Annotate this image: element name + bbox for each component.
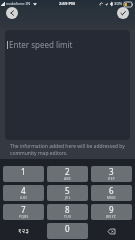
button[interactable]: 0 bbox=[47, 223, 88, 239]
staticText: DEF bbox=[108, 177, 115, 181]
other: Backspace bbox=[108, 229, 115, 234]
button[interactable]: Done bbox=[117, 7, 129, 19]
staticText: 4 bbox=[21, 185, 26, 196]
staticText: ABC bbox=[64, 177, 72, 181]
staticText: vodafone IN bbox=[6, 1, 31, 7]
staticText: PQRS bbox=[19, 215, 29, 219]
button[interactable]: 4 bbox=[3, 185, 44, 201]
button[interactable]: 3 bbox=[91, 166, 132, 182]
button[interactable]: १२३ bbox=[3, 223, 44, 239]
staticText: Enter speed limit bbox=[9, 39, 73, 50]
staticText: JKL bbox=[65, 196, 71, 200]
button[interactable]: 5 bbox=[47, 185, 88, 201]
staticText: GHI bbox=[20, 196, 27, 200]
staticText: MNO bbox=[107, 196, 117, 200]
staticText: 3 bbox=[109, 166, 114, 177]
button[interactable]: 2 bbox=[47, 166, 88, 182]
button[interactable]: Backspace bbox=[91, 223, 132, 239]
staticText: 7 bbox=[21, 204, 26, 215]
button[interactable]: Back bbox=[6, 7, 18, 19]
staticText: १२३ bbox=[18, 227, 29, 236]
button[interactable]: Enter speed limit bbox=[5, 30, 130, 140]
staticText: 0 bbox=[65, 223, 70, 234]
staticText: The information added here will be addre… bbox=[10, 143, 125, 157]
staticText: 9 bbox=[109, 204, 114, 215]
staticText: 30% bbox=[114, 1, 123, 7]
staticText: 2:59 PM bbox=[59, 1, 76, 7]
button[interactable]: 1 bbox=[3, 166, 44, 182]
staticText: 2 bbox=[65, 166, 70, 177]
button[interactable]: 9 bbox=[91, 204, 132, 220]
staticText: 6 bbox=[109, 185, 114, 196]
staticText: 8 bbox=[65, 204, 70, 215]
button[interactable]: 7 bbox=[3, 204, 44, 220]
staticText: 5 bbox=[65, 185, 70, 196]
staticText: TUV bbox=[64, 215, 72, 219]
staticText: 1 bbox=[21, 166, 26, 177]
button[interactable]: 6 bbox=[91, 185, 132, 201]
button[interactable]: 8 bbox=[47, 204, 88, 220]
staticText: WXYZ bbox=[106, 215, 117, 219]
